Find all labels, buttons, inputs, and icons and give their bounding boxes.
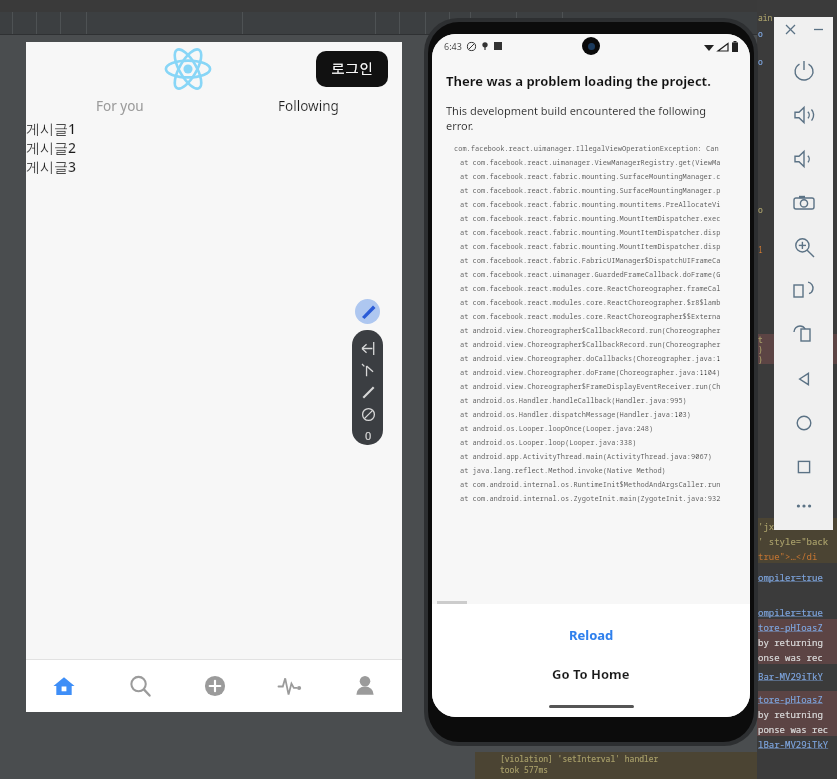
button[interactable]: 게시글1 — [26, 119, 402, 138]
button[interactable]: For you — [26, 95, 214, 117]
button[interactable]: Rotate left — [774, 269, 833, 313]
button[interactable] — [450, 12, 470, 34]
staticText: at android.os.Handler.handleCallback(Han… — [460, 396, 687, 406]
button[interactable]: Back — [774, 357, 833, 401]
button[interactable]: 게시글2 — [26, 138, 402, 157]
staticText: at com.facebook.react.fabric.mounting.Mo… — [460, 228, 721, 238]
button[interactable]: More — [774, 489, 833, 523]
button[interactable]: Go To Home — [528, 661, 654, 687]
staticText: [violation] 'setInterval' handler — [500, 753, 659, 764]
staticText: ) — [758, 344, 763, 354]
staticText: o — [758, 28, 763, 38]
button[interactable]: Profile — [327, 660, 402, 712]
staticText: 게시글1 — [26, 119, 77, 138]
staticText: at android.os.Looper.loopOnce(Looper.jav… — [460, 424, 654, 434]
staticText: took 577ms — [500, 764, 548, 775]
staticText: lBar-MV29iTkY — [758, 738, 829, 750]
staticText: ) — [758, 354, 763, 364]
staticText: at com.facebook.react.fabric.mounting.Mo… — [460, 242, 721, 252]
staticText: at com.facebook.react.fabric.mounting.Mo… — [460, 214, 721, 224]
staticText: t — [758, 334, 763, 344]
staticText: Bar-MV29iTkY — [758, 670, 823, 682]
staticText: 'jx r-flex-13 — [758, 520, 829, 532]
staticText: 6:43 — [444, 40, 462, 52]
staticText: at com.facebook.react.uimanager.GuardedF… — [460, 270, 721, 280]
button[interactable]: Screenshot — [774, 181, 833, 225]
staticText: at android.view.Choreographer$CallbackRe… — [460, 340, 721, 350]
staticText: 1 — [758, 244, 763, 254]
button[interactable]: Select — [357, 359, 379, 381]
staticText: com.facebook.react.uimanager.IllegalView… — [454, 144, 719, 154]
staticText: onse was rec — [758, 651, 823, 663]
button[interactable]: Following — [214, 95, 402, 117]
staticText: Reload — [569, 626, 614, 644]
button[interactable]: Rotate right — [774, 313, 833, 357]
button[interactable]: Close — [781, 20, 799, 38]
staticText: at java.lang.reflect.Method.invoke(Nativ… — [460, 466, 666, 476]
staticText: ompiler=true — [758, 606, 823, 618]
button[interactable]: Power — [774, 49, 833, 93]
staticText: ponse was rec — [758, 723, 829, 735]
staticText: at com.android.internal.os.RuntimeInit$M… — [460, 480, 721, 490]
staticText: tore-pHIoasZ — [758, 621, 823, 633]
button[interactable] — [426, 12, 449, 34]
staticText: at com.facebook.react.modules.core.React… — [460, 312, 721, 322]
staticText: 게시글2 — [26, 138, 77, 157]
staticText: at android.app.ActivityThread.main(Activ… — [460, 452, 712, 462]
staticText: at com.facebook.react.modules.core.React… — [460, 284, 721, 294]
button[interactable]: Activity — [252, 660, 327, 712]
staticText: at com.facebook.react.uimanager.ViewMana… — [460, 158, 721, 168]
button[interactable]: Minimize — [809, 20, 827, 38]
button[interactable]: Pen — [355, 299, 380, 324]
staticText: 로그인 — [331, 60, 373, 78]
staticText: ompiler=true — [758, 571, 823, 583]
staticText: 게시글3 — [26, 157, 77, 176]
button[interactable]: Disable — [357, 403, 379, 425]
button[interactable]: Draw — [357, 381, 379, 403]
button[interactable]: 게시글3 — [26, 157, 402, 176]
button[interactable] — [471, 12, 516, 34]
staticText: Go To Home — [552, 665, 630, 683]
staticText: tore-pHIoasZ — [758, 693, 823, 705]
staticText: at android.view.Choreographer$FrameDispl… — [460, 382, 721, 392]
staticText: ain — [758, 12, 773, 22]
button[interactable]: Home — [774, 401, 833, 445]
staticText: at com.facebook.react.modules.core.React… — [460, 298, 721, 308]
staticText: o — [758, 204, 763, 214]
staticText: by returning — [758, 636, 823, 648]
button[interactable]: Overview — [774, 445, 833, 489]
staticText: at android.os.Looper.loop(Looper.java:33… — [460, 438, 637, 448]
staticText: 0 — [365, 428, 372, 443]
button[interactable]: 0 — [358, 425, 378, 445]
staticText: true">…</di — [758, 550, 818, 562]
button[interactable]: Home — [26, 660, 102, 712]
staticText: at com.facebook.react.fabric.mounting.Su… — [460, 186, 721, 196]
button[interactable]: Back — [357, 337, 379, 359]
staticText: at com.facebook.react.fabric.FabricUIMan… — [460, 256, 721, 266]
button[interactable]: Create post — [177, 660, 252, 712]
button[interactable] — [517, 12, 562, 34]
staticText: at android.view.Choreographer$CallbackRe… — [460, 326, 721, 336]
staticText: by returning — [758, 708, 823, 720]
button[interactable]: 로그인 — [316, 51, 388, 87]
button[interactable]: Search — [102, 660, 177, 712]
button[interactable]: Zoom — [774, 225, 833, 269]
staticText: at com.facebook.react.fabric.mounting.mo… — [460, 200, 721, 210]
staticText: ' style="back — [758, 535, 829, 547]
staticText: at com.android.internal.os.ZygoteInit.ma… — [460, 494, 721, 504]
staticText: There was a problem loading the project. — [446, 72, 711, 90]
staticText: o — [758, 56, 763, 66]
button[interactable]: Volume up — [774, 93, 833, 137]
button[interactable]: Volume down — [774, 137, 833, 181]
staticText: at android.view.Choreographer.doFrame(Ch… — [460, 368, 721, 378]
button[interactable]: Reload — [545, 622, 638, 648]
staticText: This development build encountered the f… — [446, 103, 736, 133]
